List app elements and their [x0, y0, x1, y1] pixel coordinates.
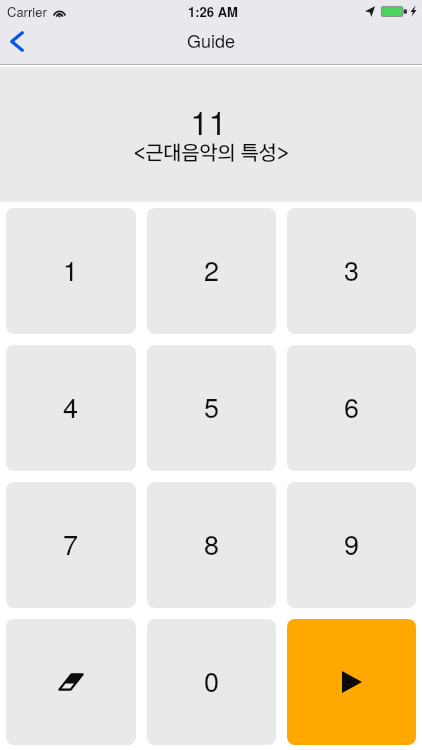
- staticText: 1: [63, 250, 79, 289]
- button[interactable]: 5: [147, 345, 276, 471]
- staticText: 1:26 AM: [188, 2, 238, 21]
- button[interactable]: 8: [147, 482, 276, 608]
- button[interactable]: 4: [6, 345, 136, 471]
- staticText: 8: [204, 524, 220, 563]
- staticText: 9: [344, 524, 360, 563]
- staticText: 2: [204, 250, 220, 289]
- button[interactable]: 1: [6, 208, 136, 334]
- staticText: 4: [63, 387, 79, 426]
- button[interactable]: Back: [0, 22, 46, 65]
- button[interactable]: 6: [287, 345, 416, 471]
- button[interactable]: 3: [287, 208, 416, 334]
- staticText: <근대음악의 특성>: [133, 140, 290, 165]
- button[interactable]: 7: [6, 482, 136, 608]
- button[interactable]: 2: [147, 208, 276, 334]
- staticText: Carrier: [7, 2, 47, 21]
- button[interactable]: Play: [287, 619, 416, 745]
- staticText: 3: [344, 250, 360, 289]
- button[interactable]: Erase: [6, 619, 136, 745]
- staticText: 6: [344, 387, 360, 426]
- button[interactable]: 9: [287, 482, 416, 608]
- button[interactable]: 0: [147, 619, 276, 745]
- staticText: 5: [204, 387, 220, 426]
- staticText: 7: [63, 524, 79, 563]
- staticText: 11: [190, 97, 227, 144]
- staticText: 0: [204, 661, 220, 700]
- staticText: Guide: [187, 27, 236, 53]
